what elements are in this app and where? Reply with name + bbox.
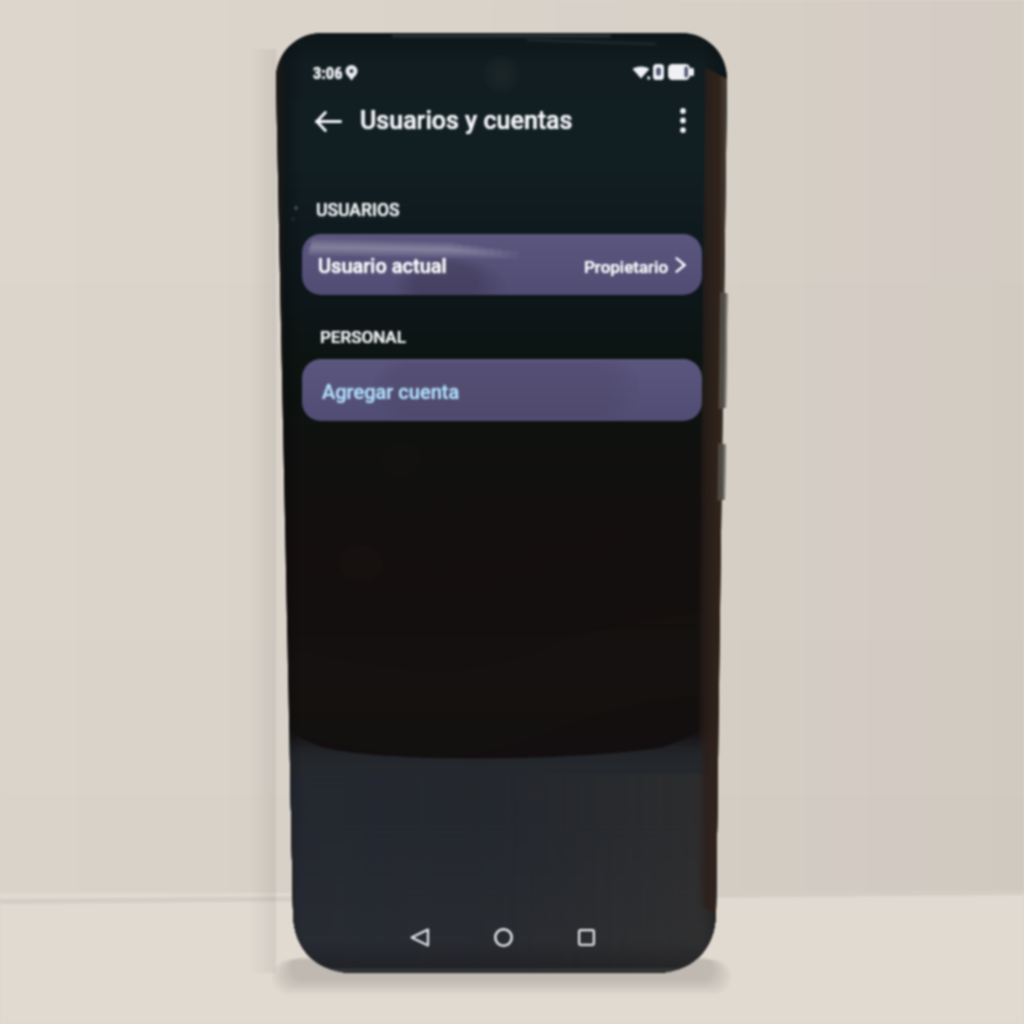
staticText: Usuarios y cuentas: [360, 107, 573, 136]
staticText: Usuarios y cuentas: [359, 106, 572, 135]
button[interactable]: More options: [662, 99, 704, 141]
button[interactable]: Home: [481, 915, 525, 959]
staticText: PERSONAL: [320, 326, 406, 346]
staticText: Propietario: [584, 258, 669, 278]
button[interactable]: Agregar cuenta: [302, 359, 702, 421]
staticText: Agregar cuenta: [322, 378, 460, 401]
staticText: Usuarios y cuentas: [360, 106, 573, 135]
staticText: Agregar cuenta: [321, 380, 459, 403]
staticText: PERSONAL: [320, 328, 406, 348]
button[interactable]: Recents: [564, 915, 608, 959]
staticText: 3:06: [313, 63, 343, 82]
staticText: Usuario actual: [318, 256, 447, 279]
staticText: Propietario: [584, 256, 669, 276]
button[interactable]: Usuario actual: [302, 234, 702, 295]
staticText: USUARIOS: [316, 202, 400, 223]
staticText: Usuario actual: [318, 254, 447, 277]
staticText: Propietario: [584, 257, 669, 277]
button[interactable]: Back: [398, 915, 442, 959]
staticText: Usuario actual: [319, 254, 448, 277]
staticText: Agregar cuenta: [322, 380, 460, 403]
staticText: 3:06: [313, 64, 343, 83]
staticText: Propietario: [583, 257, 668, 277]
staticText: Usuario actual: [318, 253, 447, 276]
staticText: Agregar cuenta: [323, 380, 461, 403]
staticText: USUARIOS: [317, 200, 401, 221]
button[interactable]: Back: [304, 97, 352, 145]
staticText: PERSONAL: [320, 327, 406, 347]
staticText: PERSONAL: [319, 327, 405, 347]
staticText: PERSONAL: [321, 327, 407, 347]
staticText: Agregar cuenta: [322, 381, 460, 404]
staticText: 3:06: [312, 64, 342, 83]
staticText: Propietario: [585, 257, 670, 277]
staticText: USUARIOS: [316, 200, 400, 221]
staticText: Usuarios y cuentas: [361, 106, 574, 135]
staticText: Usuario actual: [317, 254, 446, 277]
staticText: 3:06: [314, 64, 344, 83]
staticText: 3:06: [313, 65, 343, 84]
staticText: USUARIOS: [316, 199, 400, 220]
staticText: Usuarios y cuentas: [360, 105, 573, 134]
staticText: USUARIOS: [315, 200, 399, 221]
